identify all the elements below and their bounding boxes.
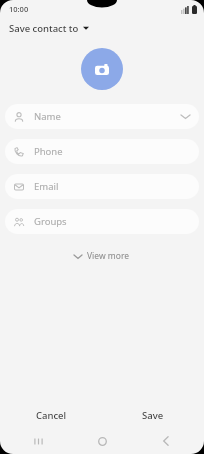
button[interactable]: Back	[140, 428, 192, 454]
button[interactable]: Recent apps	[12, 428, 64, 454]
staticText: Name	[34, 110, 61, 123]
staticText: View more	[87, 250, 130, 262]
staticText: Phone	[34, 145, 63, 158]
staticText: Save	[142, 409, 164, 422]
button[interactable]: Email	[5, 174, 199, 199]
button[interactable]: Home	[76, 428, 128, 454]
button[interactable]: Name	[5, 104, 199, 129]
staticText: Cancel	[36, 409, 67, 422]
button[interactable]: View more	[68, 247, 136, 265]
button[interactable]: Save	[102, 402, 204, 428]
button[interactable]: Phone	[5, 139, 199, 164]
staticText: 10:00	[9, 4, 29, 14]
staticText: Email	[34, 180, 59, 193]
button[interactable]: Cancel	[0, 402, 102, 428]
staticText: Groups	[34, 215, 67, 228]
button[interactable]: Add contact photo	[81, 48, 123, 90]
button[interactable]: Save contact to	[0, 18, 204, 38]
button[interactable]: Groups	[5, 209, 199, 234]
staticText: Save contact to	[9, 22, 79, 35]
